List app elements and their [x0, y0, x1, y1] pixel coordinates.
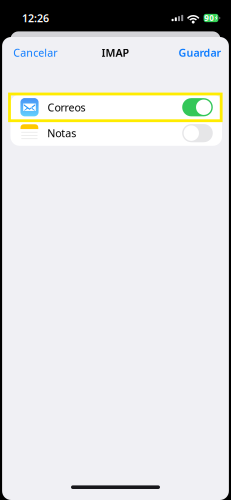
staticText: Guardar [178, 45, 221, 60]
staticText: IMAP [101, 45, 129, 60]
button[interactable]: Guardar [175, 40, 224, 65]
staticText: 12:26 [22, 11, 49, 25]
staticText: Correos [47, 100, 85, 114]
button[interactable]: Cancelar [10, 40, 60, 65]
staticText: Cancelar [13, 45, 57, 60]
staticText: 90 [204, 13, 214, 23]
button[interactable]: Correos [10, 95, 222, 120]
button[interactable]: Notas [10, 120, 222, 146]
staticText: Notas [47, 126, 76, 140]
